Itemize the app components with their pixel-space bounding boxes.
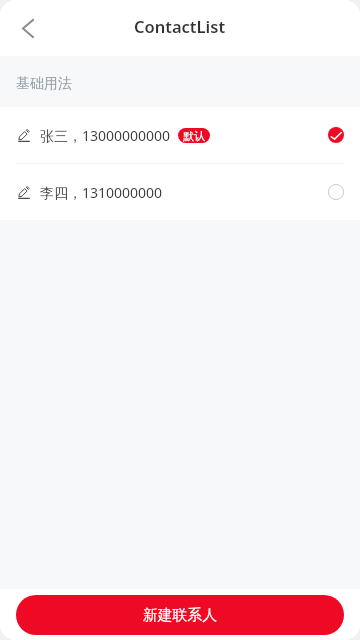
button[interactable]: Edit contact — [16, 128, 30, 142]
button[interactable]: 新建联系人 — [16, 595, 344, 635]
staticText: 默认 — [183, 129, 205, 143]
button[interactable]: Select contact — [328, 184, 344, 200]
button[interactable]: Selected, default contact — [328, 127, 344, 143]
button[interactable]: Edit contact — [16, 185, 30, 199]
button[interactable]: Back — [0, 0, 56, 56]
staticText: ContactList — [134, 15, 226, 37]
staticText: 张三，13000000000 — [40, 126, 171, 145]
button[interactable]: Edit contact — [0, 107, 360, 163]
staticText: 基础用法 — [16, 75, 72, 93]
button[interactable]: Edit contact — [0, 164, 360, 220]
staticText: 李四，1310000000 — [40, 183, 163, 202]
staticText: 新建联系人 — [143, 606, 217, 625]
